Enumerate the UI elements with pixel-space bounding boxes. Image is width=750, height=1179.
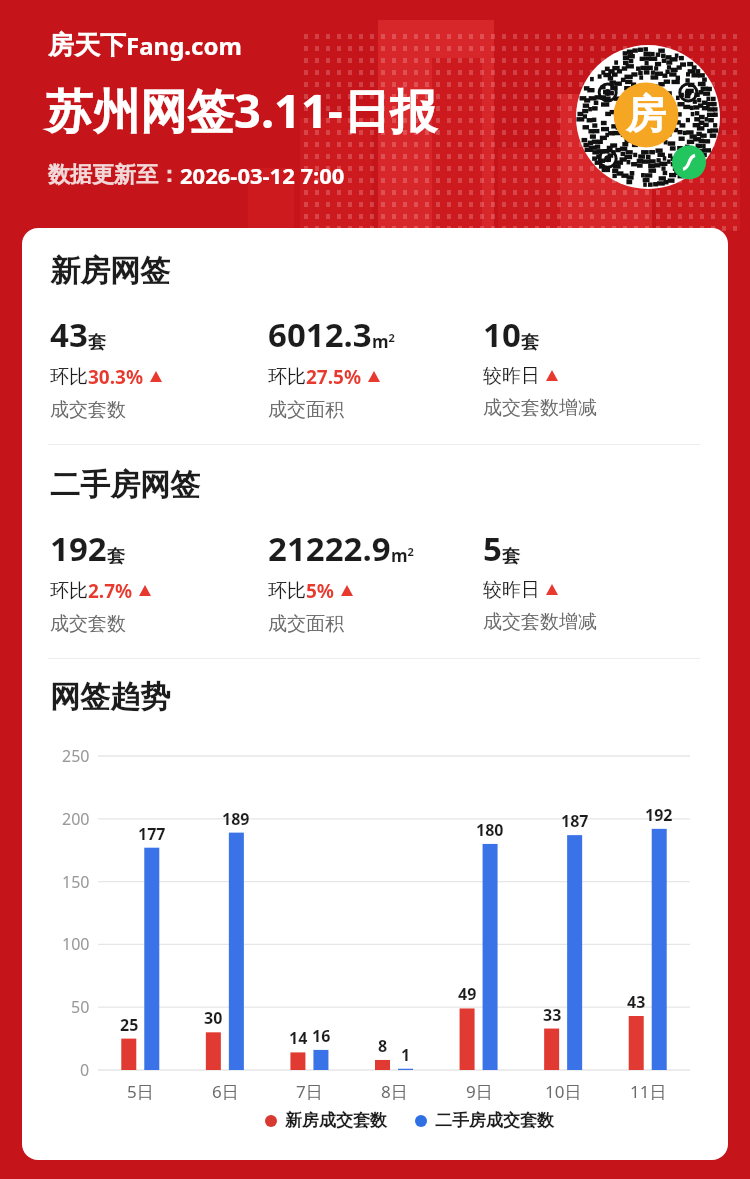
staticText: 成交套数 bbox=[50, 398, 126, 422]
staticText: 成交面积 bbox=[268, 398, 344, 422]
staticText: 33 bbox=[543, 1004, 562, 1026]
staticText: 新房成交套数 bbox=[285, 1110, 387, 1131]
staticText: 200 bbox=[62, 808, 90, 830]
staticText: 成交套数 bbox=[50, 612, 126, 636]
staticText: 套 bbox=[521, 331, 539, 354]
staticText: 2.7% bbox=[88, 578, 133, 604]
staticText: 房 bbox=[626, 89, 666, 139]
staticText: m2 bbox=[391, 544, 414, 567]
staticText: 5% bbox=[306, 578, 335, 604]
staticText: 套 bbox=[88, 331, 106, 354]
staticText: 5日 bbox=[127, 1080, 154, 1103]
staticText: 11日 bbox=[630, 1080, 667, 1103]
staticText: 新房网签 bbox=[50, 252, 170, 290]
staticText: 43 bbox=[627, 991, 646, 1013]
staticText: 100 bbox=[62, 933, 90, 955]
staticText: 189 bbox=[222, 808, 250, 830]
staticText: 27.5% bbox=[306, 364, 362, 390]
staticText: 0 bbox=[80, 1059, 90, 1081]
staticText: 5 bbox=[483, 526, 502, 571]
button[interactable]: 扫码二维码 bbox=[576, 45, 720, 189]
staticText: Fang.com bbox=[126, 29, 242, 62]
staticText: 苏州网签3.11-日报 bbox=[46, 78, 437, 142]
staticText: 环比 bbox=[268, 579, 306, 603]
staticText: 14 bbox=[289, 1027, 308, 1049]
staticText: 192 bbox=[50, 526, 107, 571]
staticText: 环比 bbox=[50, 579, 88, 603]
staticText: 192 bbox=[645, 804, 673, 826]
staticText: 房天下 bbox=[48, 29, 126, 62]
staticText: 43 bbox=[50, 312, 88, 357]
staticText: 数据更新至： bbox=[48, 161, 180, 189]
staticText: 250 bbox=[62, 745, 90, 767]
staticText: 10 bbox=[483, 312, 521, 357]
staticText: 较昨日 bbox=[483, 364, 540, 388]
staticText: 180 bbox=[476, 819, 504, 841]
staticText: 187 bbox=[561, 810, 589, 832]
staticText: 套 bbox=[107, 545, 125, 568]
staticText: 套 bbox=[502, 545, 520, 568]
staticText: 8日 bbox=[381, 1080, 408, 1103]
button[interactable]: 新房成交套数 bbox=[265, 1110, 554, 1131]
staticText: 30 bbox=[204, 1007, 223, 1029]
staticText: 9日 bbox=[466, 1080, 493, 1103]
staticText: 二手房成交套数 bbox=[435, 1110, 554, 1131]
staticText: 成交面积 bbox=[268, 612, 344, 636]
staticText: 50 bbox=[71, 996, 90, 1018]
staticText: 8 bbox=[378, 1035, 388, 1057]
staticText: 环比 bbox=[268, 365, 306, 389]
staticText: 成交套数增减 bbox=[483, 396, 597, 420]
staticText: 177 bbox=[138, 823, 166, 845]
staticText: 30.3% bbox=[88, 364, 144, 390]
staticText: 网签趋势 bbox=[50, 678, 170, 716]
staticText: 150 bbox=[62, 871, 90, 893]
staticText: 较昨日 bbox=[483, 578, 540, 602]
staticText: 环比 bbox=[50, 365, 88, 389]
staticText: 49 bbox=[458, 983, 477, 1005]
staticText: 16 bbox=[312, 1025, 331, 1047]
staticText: 6012.3 bbox=[268, 312, 372, 357]
staticText: 21222.9 bbox=[268, 526, 391, 571]
staticText: 6日 bbox=[212, 1080, 239, 1103]
staticText: 二手房网签 bbox=[50, 466, 200, 504]
staticText: 2026-03-12 7:00 bbox=[180, 160, 345, 190]
staticText: 7日 bbox=[296, 1080, 323, 1103]
staticText: 25 bbox=[120, 1014, 139, 1036]
staticText: 10日 bbox=[545, 1080, 582, 1103]
staticText: 1 bbox=[401, 1044, 411, 1066]
staticText: m2 bbox=[372, 330, 395, 353]
staticText: 成交套数增减 bbox=[483, 610, 597, 634]
